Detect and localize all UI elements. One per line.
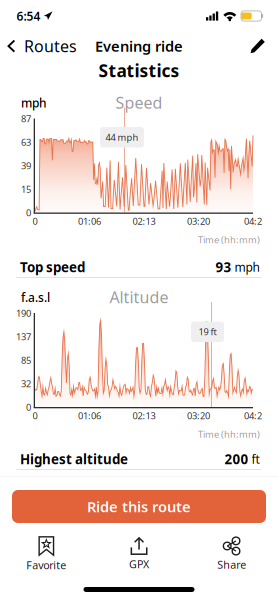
staticText: 0	[32, 409, 37, 422]
staticText: 02:13	[132, 409, 155, 422]
staticText: 19 ft	[198, 326, 216, 338]
staticText: 6:54	[16, 8, 40, 24]
button[interactable]: Share	[185, 535, 278, 573]
button[interactable]: Edit	[242, 33, 278, 59]
staticText: Evening ride	[95, 36, 183, 56]
staticText: 63	[21, 136, 31, 148]
staticText: mph	[234, 259, 259, 275]
staticText: Time (hh:mm)	[198, 428, 260, 440]
staticText: 93	[215, 258, 231, 276]
staticText: 01:06	[78, 409, 101, 422]
staticText: 137	[16, 330, 31, 343]
staticText: Highest altitude	[20, 450, 128, 468]
staticText: 0	[26, 401, 31, 413]
staticText: Time (hh:mm)	[198, 233, 260, 246]
staticText: Routes	[24, 35, 77, 57]
staticText: 03:20	[187, 215, 210, 227]
button[interactable]: Ride this route	[12, 490, 266, 523]
staticText: 44 mph	[105, 131, 138, 143]
button[interactable]: GPX	[93, 536, 185, 572]
staticText: ft	[251, 451, 259, 467]
staticText: mph	[21, 95, 47, 111]
staticText: GPX	[129, 557, 149, 571]
staticText: 39	[21, 159, 31, 172]
staticText: 200	[224, 450, 248, 468]
staticText: 02:13	[132, 215, 155, 227]
staticText: Altitude	[109, 286, 168, 308]
staticText: 03:20	[187, 409, 210, 422]
staticText: 87	[21, 112, 31, 125]
staticText: 32	[21, 377, 31, 390]
staticText: 01:06	[78, 215, 101, 227]
staticText: Share	[217, 557, 246, 572]
staticText: 15	[21, 183, 31, 195]
staticText: Top speed	[20, 258, 85, 276]
staticText: f.a.s.l	[21, 289, 50, 305]
staticText: Speed	[115, 92, 162, 113]
staticText: 04:2	[244, 215, 262, 227]
staticText: Statistics	[98, 59, 179, 82]
staticText: 85	[21, 354, 31, 366]
staticText: 0	[32, 215, 37, 227]
staticText: 190	[16, 307, 31, 319]
button[interactable]: Favorite	[0, 535, 93, 573]
staticText: 04:2	[244, 409, 262, 422]
staticText: Ride this route	[87, 497, 191, 516]
staticText: 0	[26, 206, 31, 219]
staticText: Favorite	[26, 558, 66, 572]
button[interactable]: Routes	[0, 30, 83, 62]
